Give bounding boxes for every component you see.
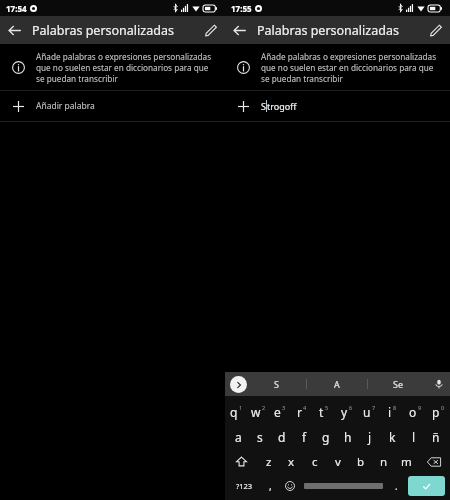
staticText: 6 (349, 404, 353, 411)
staticText: A (334, 378, 340, 390)
staticText: 9 (418, 404, 422, 411)
button[interactable]: Edit (422, 16, 450, 44)
staticText: trogoff (267, 100, 297, 112)
staticText: p (432, 404, 440, 420)
staticText: r (297, 404, 302, 420)
staticText: Palabras personalizadas (32, 22, 174, 39)
staticText: 0 (441, 404, 445, 411)
staticText: j (368, 429, 372, 445)
button[interactable]: Voice input (428, 372, 450, 396)
staticText: Añadir palabra (36, 100, 95, 112)
staticText: y (341, 404, 348, 420)
staticText: i (388, 404, 392, 420)
staticText: o (409, 404, 417, 420)
staticText: b (357, 454, 365, 470)
staticText: e (274, 404, 281, 420)
staticText: g (322, 429, 330, 445)
button[interactable]: Añade palabras o expresiones personaliza… (0, 44, 225, 90)
staticText: k (389, 429, 396, 445)
staticText: 4 (303, 404, 307, 411)
button[interactable]: l (403, 424, 425, 449)
button[interactable]: f (293, 424, 315, 449)
staticText: u (363, 404, 371, 420)
staticText: 5 (325, 404, 329, 411)
button[interactable]: Back (0, 16, 28, 44)
button[interactable]: S (225, 91, 450, 121)
staticText: v (335, 454, 341, 470)
button[interactable]: p (427, 399, 450, 424)
staticText: , (269, 479, 272, 493)
button[interactable]: i (381, 399, 404, 424)
button[interactable]: m (395, 449, 418, 474)
button[interactable]: b (349, 449, 372, 474)
button[interactable]: Edit (197, 16, 225, 44)
staticText: q (230, 404, 238, 420)
staticText: w (251, 404, 261, 420)
staticText: 7 (372, 404, 376, 411)
staticText: m (401, 454, 412, 470)
button[interactable]: h (337, 424, 359, 449)
button[interactable]: o (404, 399, 427, 424)
button[interactable]: , (260, 474, 280, 498)
staticText: h (344, 429, 352, 445)
button[interactable]: S (247, 372, 306, 396)
staticText: Añade palabras o expresiones personaliza… (36, 51, 217, 84)
button[interactable]: Back (225, 16, 253, 44)
staticText: . (395, 479, 398, 493)
button[interactable]: a (228, 424, 249, 449)
button[interactable]: n (372, 449, 395, 474)
staticText: 2 (262, 404, 266, 411)
button[interactable]: r (291, 399, 313, 424)
button[interactable]: Backspace (418, 449, 450, 474)
button[interactable]: e (269, 399, 291, 424)
staticText: a (235, 429, 242, 445)
staticText: n (380, 454, 388, 470)
button[interactable]: k (381, 424, 403, 449)
button[interactable]: j (359, 424, 381, 449)
button[interactable]: d (271, 424, 293, 449)
staticText: 8 (393, 404, 397, 411)
staticText: l (412, 429, 416, 445)
button[interactable]: ?123 (228, 474, 260, 498)
button[interactable]: Shift (225, 449, 257, 474)
button[interactable]: g (315, 424, 337, 449)
staticText: 3 (282, 404, 286, 411)
button[interactable]: t (313, 399, 335, 424)
staticText: 17:54 (6, 3, 27, 14)
staticText: t (319, 404, 324, 420)
staticText: z (266, 454, 272, 470)
staticText: 17:55 (231, 3, 252, 14)
button[interactable]: Space (300, 474, 386, 498)
button[interactable]: w (247, 399, 269, 424)
staticText: f (302, 429, 307, 445)
button[interactable]: . (386, 474, 406, 498)
button[interactable]: Expand suggestions (230, 376, 247, 393)
button[interactable]: Añadir palabra (0, 91, 225, 121)
button[interactable]: Añade palabras o expresiones personaliza… (225, 44, 450, 90)
staticText: S (261, 100, 266, 112)
staticText: S (274, 378, 279, 390)
staticText: s (257, 429, 263, 445)
button[interactable]: Enter (408, 476, 445, 496)
staticText: Palabras personalizadas (257, 22, 399, 39)
button[interactable]: z (257, 449, 280, 474)
button[interactable]: u (358, 399, 381, 424)
staticText: Añade palabras o expresiones personaliza… (261, 51, 442, 84)
button[interactable]: s (249, 424, 271, 449)
staticText: ñ (432, 429, 440, 445)
button[interactable]: x (280, 449, 303, 474)
staticText: d (278, 429, 286, 445)
staticText: ?123 (236, 481, 253, 491)
button[interactable]: Se (368, 372, 428, 396)
button[interactable]: c (303, 449, 326, 474)
button[interactable]: q (225, 399, 247, 424)
staticText: 1 (239, 404, 243, 411)
button[interactable]: Emoji (280, 474, 300, 498)
button[interactable]: y (335, 399, 358, 424)
button[interactable]: ñ (425, 424, 447, 449)
staticText: c (312, 454, 318, 470)
button[interactable]: A (307, 372, 367, 396)
staticText: Se (393, 378, 404, 390)
button[interactable]: v (326, 449, 349, 474)
staticText: x (288, 454, 295, 470)
